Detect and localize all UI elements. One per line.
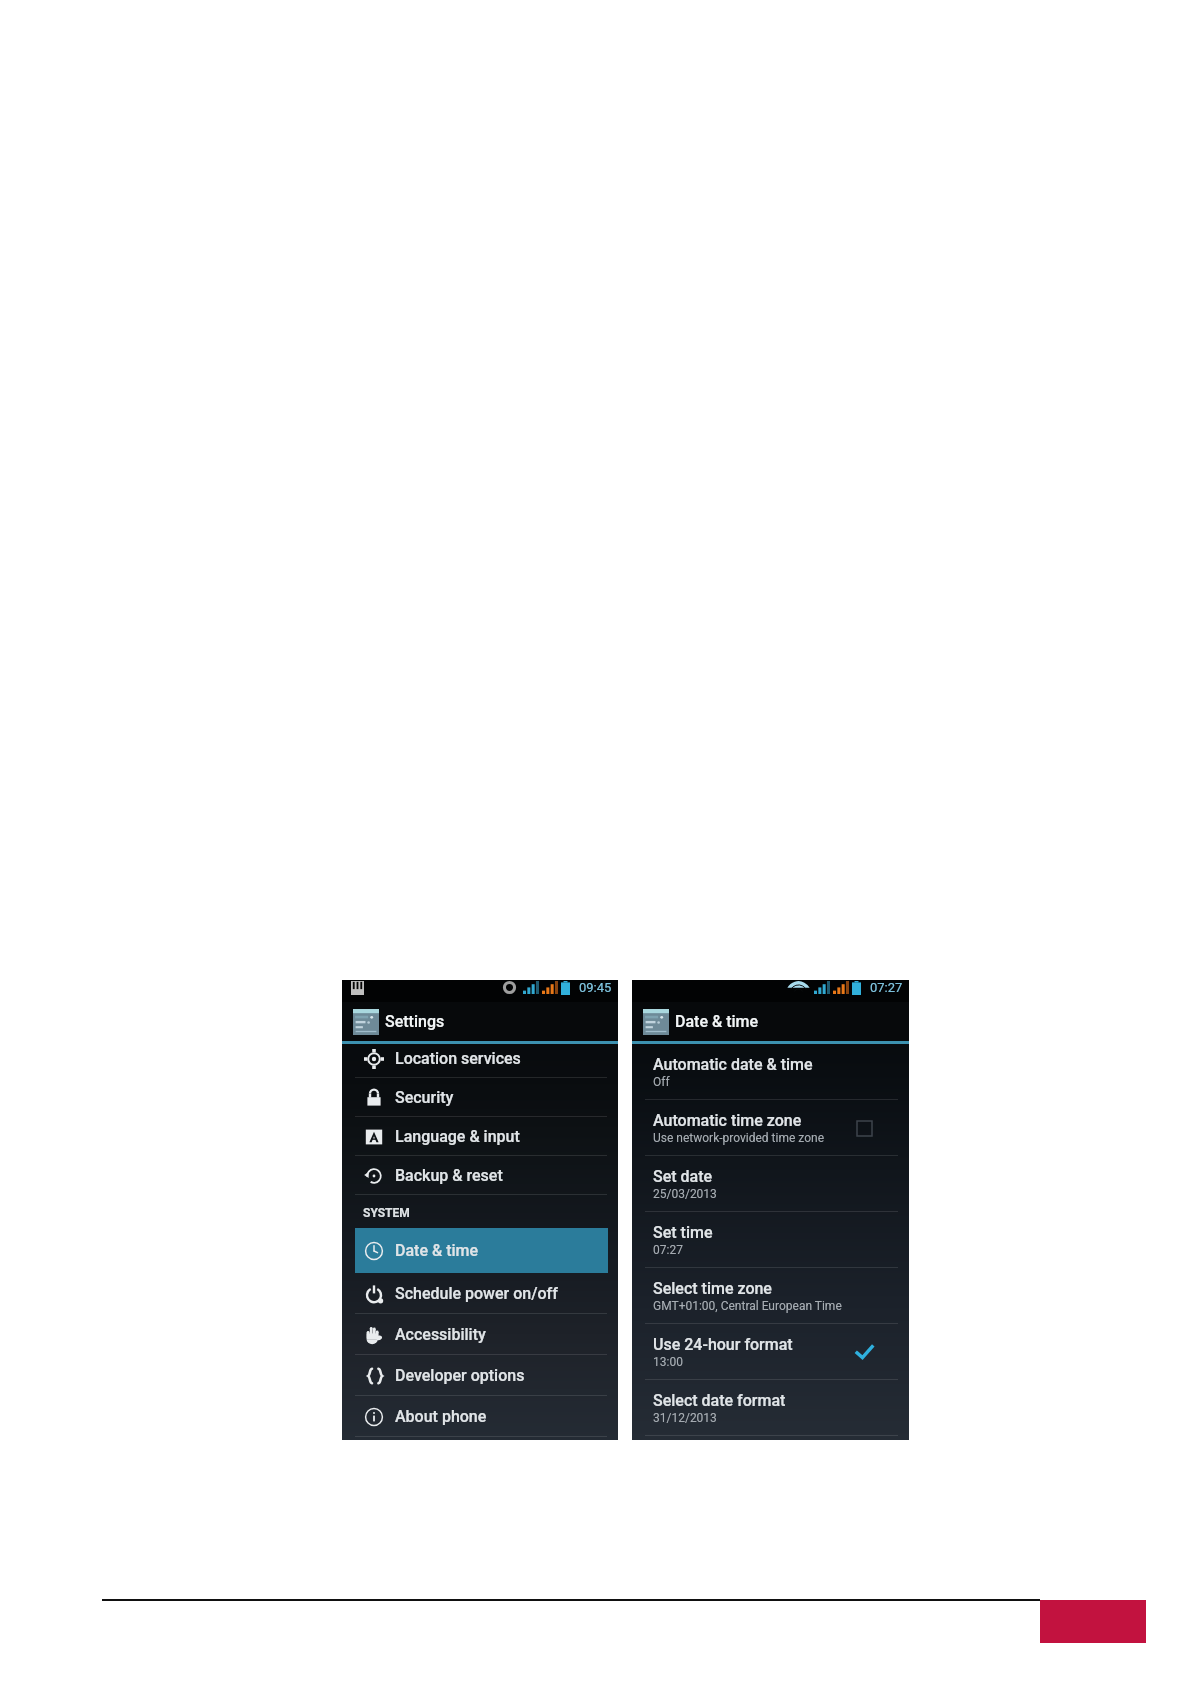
other: Up <box>643 1009 669 1035</box>
staticText: GMT+01:00, Central European Time <box>653 1299 842 1313</box>
button[interactable]: Set date <box>632 1156 909 1212</box>
staticText: Date & time <box>395 1241 479 1260</box>
staticText: 25/03/2013 <box>653 1187 717 1201</box>
staticText: Use network-provided time zone <box>653 1131 825 1145</box>
staticText: Date & time <box>675 1012 759 1031</box>
button[interactable]: Automatic time zone <box>632 1100 909 1156</box>
staticText: Select date format <box>653 1391 786 1410</box>
staticText: 31/12/2013 <box>653 1411 717 1425</box>
staticText: Automatic date & time <box>653 1055 813 1074</box>
staticText: 09:45 <box>579 980 612 995</box>
button[interactable]: Developer options <box>342 1355 618 1396</box>
staticText: Developer options <box>395 1366 525 1385</box>
button[interactable]: Use 24-hour format <box>632 1324 909 1380</box>
other: SIM 1 signal <box>814 981 830 994</box>
staticText: Settings <box>385 1012 445 1031</box>
other: SIM 1 signal <box>523 981 539 994</box>
other: Wi-Fi signal <box>791 982 806 994</box>
other: SIM 2 signal <box>833 981 849 994</box>
button[interactable]: Set time <box>632 1212 909 1268</box>
button[interactable]: Schedule power on/off <box>342 1273 618 1314</box>
button[interactable]: Automatic date & time <box>632 1044 909 1100</box>
staticText: Select time zone <box>653 1279 772 1298</box>
button[interactable]: Location services <box>342 1039 618 1078</box>
button[interactable]: Checked <box>853 1341 875 1363</box>
button[interactable]: Up <box>342 1002 618 1041</box>
staticText: About phone <box>395 1407 487 1426</box>
button[interactable]: Accessibility <box>342 1314 618 1355</box>
other: Sync <box>504 981 515 994</box>
button[interactable]: Up <box>632 1002 909 1041</box>
staticText: 07:27 <box>870 980 903 995</box>
staticText: Security <box>395 1088 454 1107</box>
button[interactable]: Select date format <box>632 1380 909 1436</box>
button[interactable]: Not checked <box>853 1117 875 1139</box>
button[interactable]: Language & input <box>342 1117 618 1156</box>
staticText: Language & input <box>395 1127 520 1146</box>
staticText: Accessibility <box>395 1325 486 1344</box>
staticText: Set time <box>653 1223 713 1242</box>
staticText: Automatic time zone <box>653 1111 802 1130</box>
staticText: Set date <box>653 1167 713 1186</box>
button[interactable]: Date & time <box>355 1228 608 1273</box>
other: SIM 2 signal <box>542 981 558 994</box>
other: Battery <box>852 981 861 995</box>
other: Battery <box>561 981 570 995</box>
button[interactable]: Select time zone <box>632 1268 909 1324</box>
staticText: Off <box>653 1075 670 1089</box>
staticText: Use 24-hour format <box>653 1335 793 1354</box>
button[interactable]: Security <box>342 1078 618 1117</box>
button[interactable]: Backup & reset <box>342 1156 618 1195</box>
staticText: SYSTEM <box>363 1206 410 1220</box>
staticText: Schedule power on/off <box>395 1284 558 1303</box>
other: Screenshot captured <box>351 981 364 995</box>
staticText: Backup & reset <box>395 1166 503 1185</box>
staticText: Location services <box>395 1049 521 1068</box>
button[interactable]: About phone <box>342 1396 618 1437</box>
staticText: 13:00 <box>653 1355 683 1369</box>
staticText: 07:27 <box>653 1243 683 1257</box>
other: Up <box>353 1009 379 1035</box>
